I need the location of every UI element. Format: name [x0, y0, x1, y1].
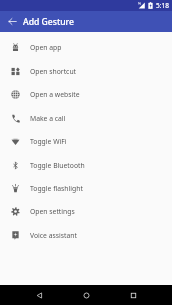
staticText: Open settings	[30, 207, 75, 216]
staticText: Voice assistant	[30, 231, 77, 240]
button[interactable]: Back	[31, 287, 47, 303]
button[interactable]: Make a call	[0, 107, 172, 130]
button[interactable]: Toggle Bluetooth	[0, 154, 172, 177]
button[interactable]: Recent apps	[125, 287, 141, 303]
staticText: Add Gesture	[23, 16, 74, 28]
button[interactable]: Back	[2, 11, 23, 32]
staticText: Open a website	[30, 90, 80, 99]
button[interactable]: Home	[78, 287, 94, 303]
button[interactable]: Open app	[0, 36, 172, 59]
button[interactable]: Voice assistant	[0, 224, 172, 247]
staticText: 5:18	[156, 1, 169, 10]
button[interactable]: Toggle WiFi	[0, 130, 172, 153]
staticText: Make a call	[30, 114, 66, 123]
button[interactable]: Toggle flashlight	[0, 177, 172, 200]
staticText: Open app	[30, 43, 62, 52]
staticText: Toggle flashlight	[30, 184, 83, 193]
button[interactable]: Open shortcut	[0, 60, 172, 83]
button[interactable]: Open settings	[0, 200, 172, 223]
staticText: Toggle Bluetooth	[30, 161, 85, 170]
staticText: Open shortcut	[30, 67, 77, 76]
button[interactable]: Open a website	[0, 83, 172, 106]
staticText: Toggle WiFi	[30, 137, 67, 146]
